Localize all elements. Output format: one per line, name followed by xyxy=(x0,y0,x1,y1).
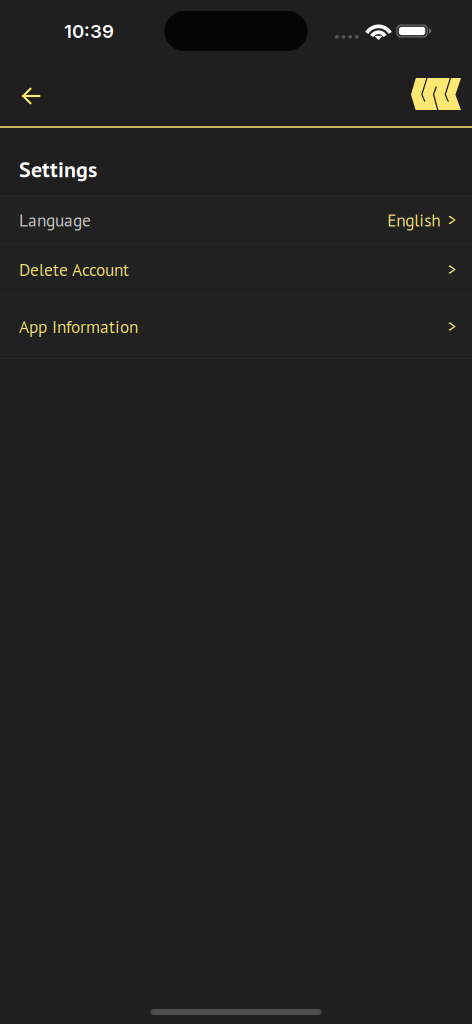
staticText: Language xyxy=(19,209,91,231)
staticText: Delete Account xyxy=(19,258,129,281)
staticText: 10:39 xyxy=(64,20,114,43)
button[interactable]: App Information xyxy=(0,295,472,359)
staticText: English xyxy=(387,209,440,231)
button[interactable]: Language xyxy=(0,196,472,245)
button[interactable]: Back xyxy=(0,62,63,126)
staticText: App Information xyxy=(19,315,138,338)
staticText: Settings xyxy=(19,155,97,183)
button[interactable]: Home xyxy=(400,62,472,126)
button[interactable]: Delete Account xyxy=(0,245,472,295)
